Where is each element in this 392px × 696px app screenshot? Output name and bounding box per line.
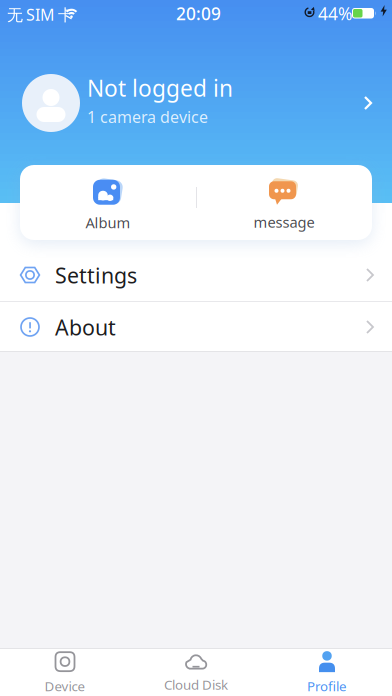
staticText: Not logged in bbox=[87, 73, 233, 103]
staticText: Settings bbox=[55, 261, 137, 289]
staticText: message bbox=[253, 212, 314, 232]
staticText: 无 SIM 卡 bbox=[7, 4, 74, 25]
staticText: 1 camera device bbox=[87, 106, 208, 127]
staticText: 20:09 bbox=[176, 2, 221, 25]
button[interactable]: About bbox=[0, 302, 392, 351]
button[interactable]: Cloud Disk bbox=[136, 650, 256, 696]
button[interactable]: Device bbox=[5, 650, 125, 696]
button[interactable]: message bbox=[199, 171, 369, 240]
staticText: Device bbox=[44, 677, 85, 695]
button[interactable]: Profile bbox=[267, 650, 387, 696]
staticText: Cloud Disk bbox=[164, 676, 228, 693]
staticText: Profile bbox=[307, 677, 347, 695]
button[interactable]: Not logged in bbox=[0, 70, 392, 136]
button[interactable]: Settings bbox=[0, 248, 392, 301]
staticText: 44% bbox=[318, 2, 352, 25]
staticText: About bbox=[55, 313, 116, 341]
button[interactable]: Album bbox=[23, 171, 193, 240]
staticText: Album bbox=[85, 213, 130, 232]
